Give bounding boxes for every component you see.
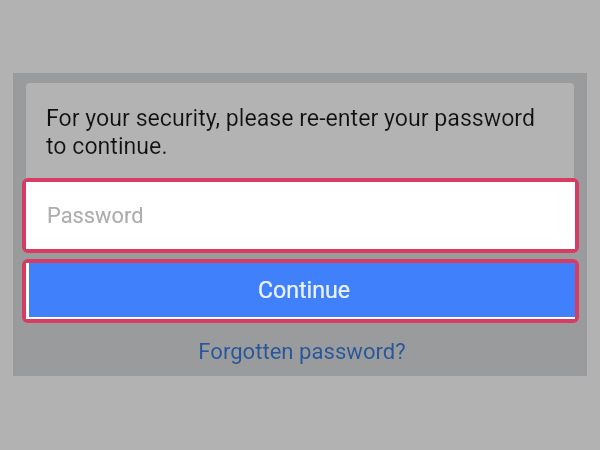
button[interactable]: Password [26, 182, 575, 249]
button[interactable]: Forgotten password? [15, 331, 589, 371]
staticText: For your security, please re-enter your … [46, 105, 546, 160]
staticText: Password [47, 203, 144, 229]
staticText: Continue [258, 277, 351, 304]
staticText: Forgotten password? [198, 338, 406, 364]
button[interactable]: Continue [26, 263, 575, 319]
